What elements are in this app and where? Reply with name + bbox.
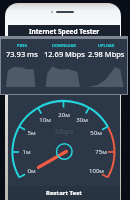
- staticText: Internet Speed Tester: [29, 27, 100, 36]
- staticText: 50м: [90, 129, 102, 137]
- staticText: 5м: [27, 129, 36, 137]
- staticText: Mbps: [55, 127, 74, 137]
- staticText: 75м: [95, 148, 107, 156]
- staticText: DOWNLOAD: [52, 43, 77, 48]
- staticText: 30м: [76, 116, 88, 124]
- button[interactable]: Restart Test: [8, 186, 120, 200]
- staticText: PING: [17, 43, 28, 48]
- staticText: 100м: [89, 167, 104, 175]
- staticText: 0м: [27, 167, 36, 175]
- staticText: 20м: [58, 111, 70, 119]
- staticText: 2.98 Mbps: [88, 49, 125, 59]
- staticText: UPLOAD: [98, 43, 115, 48]
- staticText: Restart Test: [46, 189, 82, 197]
- staticText: 1м: [22, 148, 31, 156]
- staticText: 12.69 Mbps: [44, 49, 85, 59]
- staticText: 10м: [39, 116, 51, 124]
- staticText: 73.93 ms: [6, 49, 38, 59]
